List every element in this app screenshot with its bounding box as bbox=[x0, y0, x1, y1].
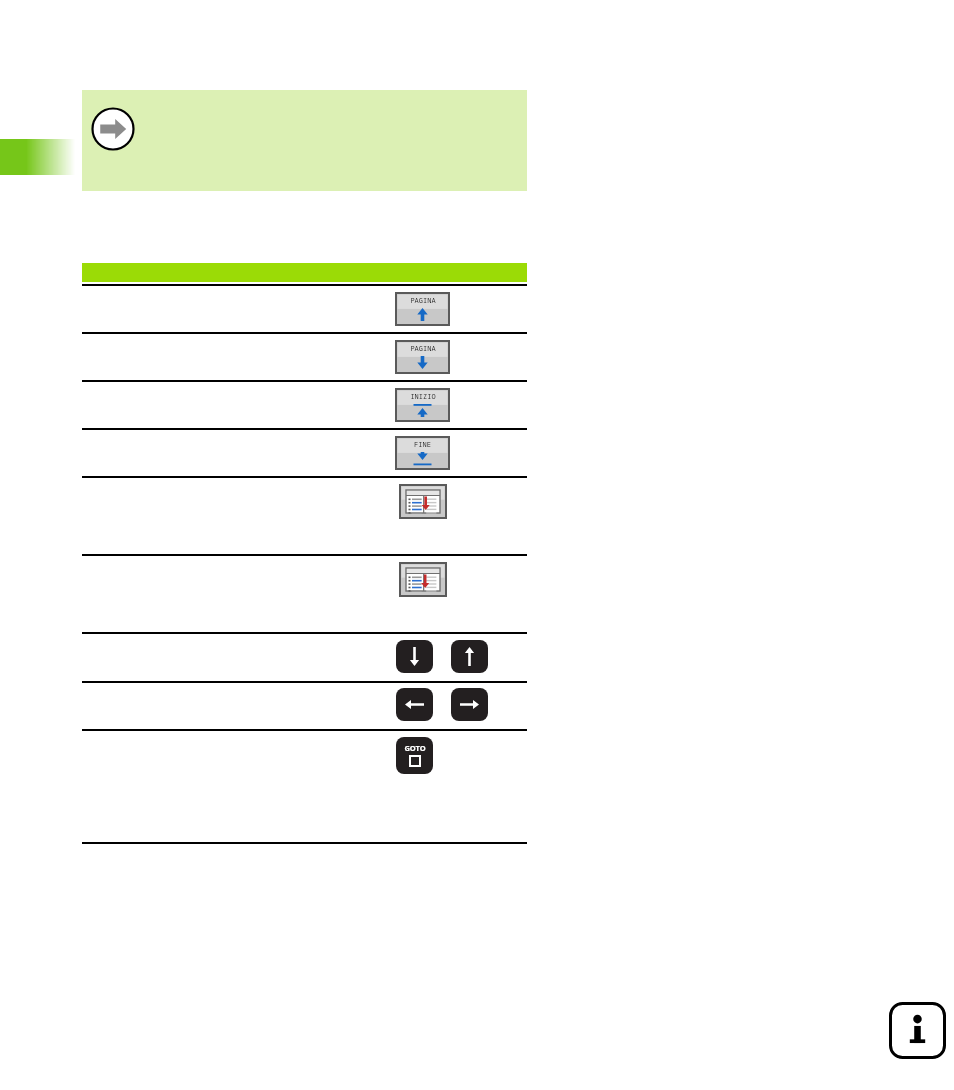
button[interactable]: Move left bbox=[396, 688, 433, 721]
button[interactable]: Previous table page bbox=[400, 485, 446, 518]
staticText: GOTO bbox=[404, 743, 426, 753]
other: Note bbox=[91, 107, 135, 151]
button[interactable]: Move right bbox=[451, 688, 488, 721]
button[interactable]: Move down bbox=[396, 640, 433, 673]
button[interactable]: PAGINA bbox=[396, 341, 449, 373]
staticText: PAGINA bbox=[410, 296, 436, 306]
button[interactable]: Next table page bbox=[400, 563, 446, 596]
staticText: FINE bbox=[414, 440, 431, 450]
staticText: INIZIO bbox=[410, 392, 436, 402]
button[interactable]: Information bbox=[889, 1002, 946, 1059]
button[interactable]: INIZIO bbox=[396, 389, 449, 421]
button[interactable]: FINE bbox=[396, 437, 449, 469]
button[interactable]: GOTO bbox=[396, 737, 433, 774]
staticText: PAGINA bbox=[410, 344, 436, 354]
button[interactable]: PAGINA bbox=[396, 293, 449, 325]
button[interactable]: Move up bbox=[451, 640, 488, 673]
